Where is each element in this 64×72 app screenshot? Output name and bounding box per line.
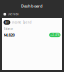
staticText: +2.4% bbox=[50, 33, 59, 37]
staticText: Dashboard bbox=[21, 3, 43, 9]
staticText: Income bbox=[11, 21, 21, 24]
staticText: $4,820 bbox=[3, 32, 14, 38]
staticText: Overview bbox=[8, 12, 19, 16]
staticText: Balance bbox=[3, 27, 13, 31]
staticText: Spend bbox=[23, 21, 32, 24]
staticText: All bbox=[5, 21, 9, 24]
